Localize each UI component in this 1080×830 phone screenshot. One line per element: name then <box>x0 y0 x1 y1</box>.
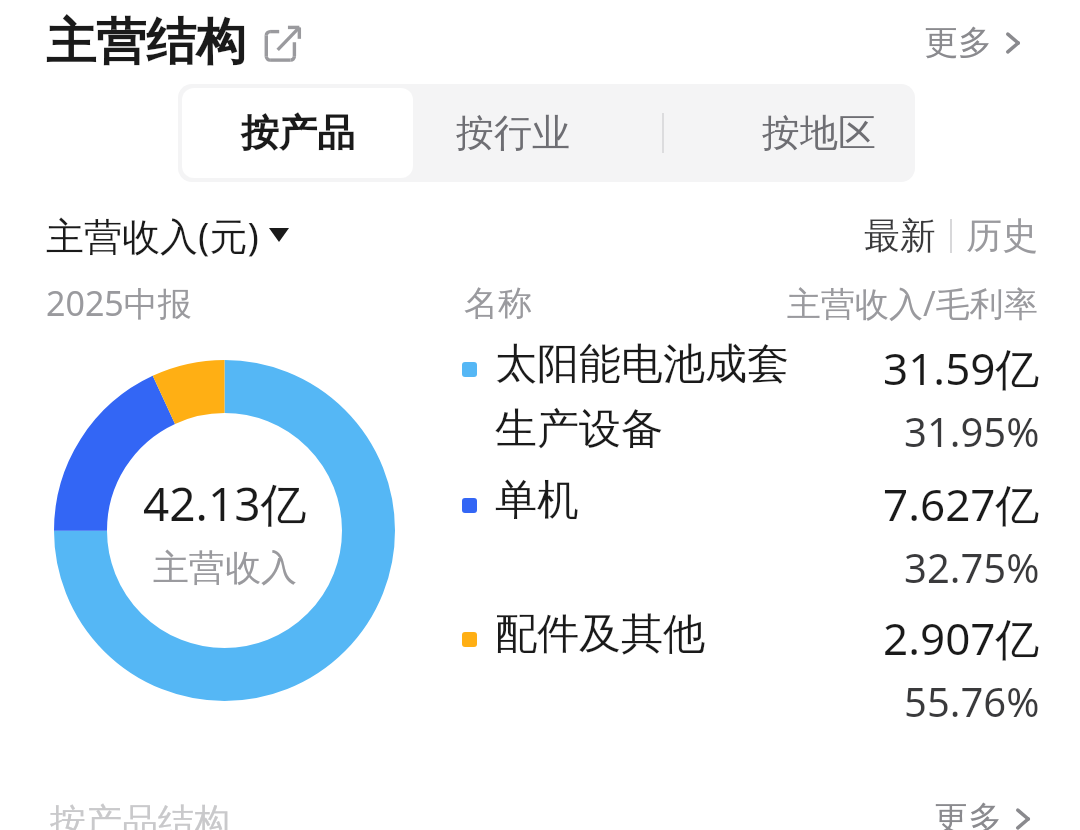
button[interactable]: 配件及其他 <box>462 608 1040 728</box>
staticText: 主营收入(元) <box>46 209 259 261</box>
staticText: 主营结构 <box>46 11 246 74</box>
staticText: 更多 <box>924 21 992 64</box>
staticText: 最新 <box>864 213 936 258</box>
staticText: 配件及其他 <box>495 608 705 661</box>
staticText: 31.95% <box>904 404 1040 458</box>
button[interactable]: 单机 <box>462 474 1040 594</box>
staticText: 7.627亿 <box>883 474 1040 534</box>
staticText: 按产品结构 <box>50 799 230 830</box>
button[interactable]: 历史 <box>966 213 1038 258</box>
button[interactable]: 更多 <box>924 21 1026 64</box>
button[interactable]: 按产品 <box>182 88 413 178</box>
staticText: 32.75% <box>904 540 1040 594</box>
button[interactable]: 主营结构 <box>46 11 302 74</box>
button[interactable]: 最新 <box>864 213 936 258</box>
staticText: 更多 <box>934 797 1002 830</box>
staticText: 2025中报 <box>46 280 192 326</box>
staticText: 单机 <box>495 474 579 527</box>
button[interactable]: 太阳能电池成套 生产设备 <box>462 338 1040 458</box>
staticText: 太阳能电池成套 生产设备 <box>495 338 789 455</box>
button[interactable]: 按行业 <box>413 84 613 182</box>
staticText: 历史 <box>966 213 1038 258</box>
staticText: 31.59亿 <box>883 338 1040 398</box>
other: Open in new window <box>264 24 302 62</box>
button[interactable]: 按地区 <box>723 84 915 182</box>
staticText: 42.13亿 <box>143 472 307 535</box>
button[interactable]: 更多 <box>934 797 1036 830</box>
staticText: 按地区 <box>762 109 876 157</box>
staticText: 主营收入/毛利率 <box>787 280 1038 326</box>
button[interactable]: 主营收入(元) <box>46 209 289 261</box>
staticText: 2.907亿 <box>883 608 1040 668</box>
staticText: 主营收入 <box>153 545 297 590</box>
staticText: 按行业 <box>456 109 570 157</box>
staticText: 按产品 <box>241 109 355 157</box>
staticText: 55.76% <box>904 674 1040 728</box>
staticText: 名称 <box>464 282 532 325</box>
